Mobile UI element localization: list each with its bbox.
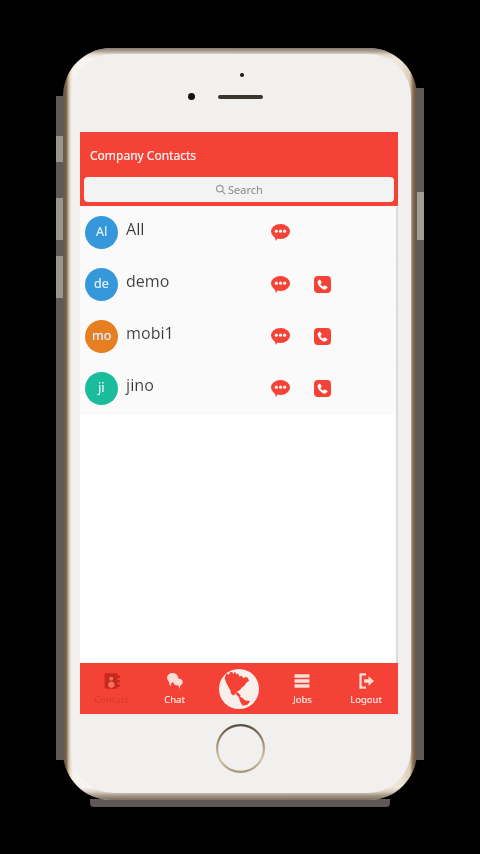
button[interactable]: Jobs	[270, 663, 334, 714]
button[interactable]: Message	[267, 271, 293, 297]
staticText: mo	[92, 327, 112, 344]
staticText: Jobs	[293, 693, 312, 706]
staticText: Contact	[94, 693, 129, 706]
button[interactable]: mo	[80, 310, 398, 362]
staticText: All	[126, 218, 145, 240]
staticText: mobi1	[126, 322, 174, 344]
button[interactable]: Al	[80, 206, 398, 258]
button[interactable]: ji	[80, 362, 398, 414]
staticText: Al	[96, 223, 108, 240]
button[interactable]: Search	[84, 177, 394, 202]
staticText: Search	[228, 182, 263, 197]
staticText: Chat	[164, 693, 185, 706]
button[interactable]: Contact	[80, 663, 143, 714]
staticText: jino	[126, 374, 154, 396]
button[interactable]: de	[80, 258, 398, 310]
staticText: Logout	[350, 693, 382, 706]
staticText: demo	[126, 270, 170, 292]
staticText: ji	[98, 379, 105, 396]
button[interactable]: Home	[217, 667, 261, 711]
staticText: de	[94, 275, 109, 292]
button[interactable]: Call	[309, 271, 335, 297]
button[interactable]: Call	[309, 323, 335, 349]
button[interactable]: Message	[267, 323, 293, 349]
button[interactable]: Chat	[143, 663, 206, 714]
button[interactable]: Message	[267, 219, 293, 245]
button[interactable]: Call	[309, 375, 335, 401]
button[interactable]: Logout	[334, 663, 398, 714]
button[interactable]: Message	[267, 375, 293, 401]
staticText: Company Contacts	[90, 147, 196, 163]
